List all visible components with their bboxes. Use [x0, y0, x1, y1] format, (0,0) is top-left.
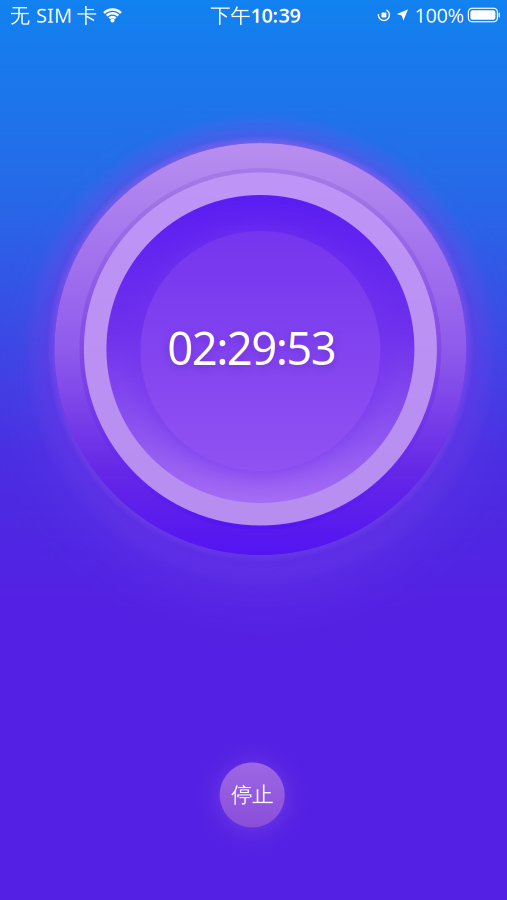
staticText: 停止: [231, 782, 273, 808]
staticText: 02:29:53: [167, 317, 337, 378]
staticText: 下午10:39: [210, 2, 300, 28]
staticText: 100%: [414, 2, 464, 28]
staticText: 无 SIM 卡: [10, 2, 97, 28]
button[interactable]: 停止: [220, 762, 285, 827]
